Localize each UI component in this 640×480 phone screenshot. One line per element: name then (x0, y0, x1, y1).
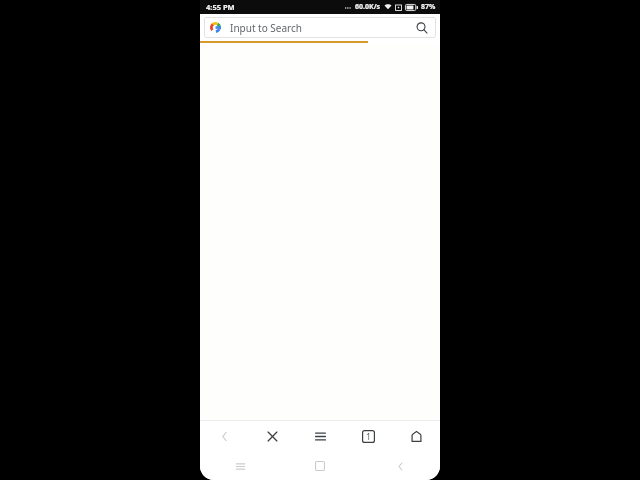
staticText: 4:55 PM (206, 2, 235, 12)
staticText: 60.0K/s (355, 2, 381, 12)
staticText: 87% (421, 2, 436, 12)
button[interactable]: Home (280, 452, 360, 480)
button[interactable]: Recent apps (200, 452, 280, 480)
button[interactable]: Menu (296, 421, 344, 452)
staticText: 1 (366, 431, 371, 442)
button[interactable]: Tabs, 1 open (344, 421, 392, 452)
button[interactable]: Input to Search (204, 17, 436, 38)
staticText: Input to Search (230, 21, 303, 35)
button[interactable]: Search (414, 20, 430, 36)
button[interactable]: Back (200, 421, 248, 452)
button[interactable]: Stop loading (248, 421, 296, 452)
button[interactable]: Back (360, 452, 440, 480)
button[interactable]: Home (392, 421, 440, 452)
